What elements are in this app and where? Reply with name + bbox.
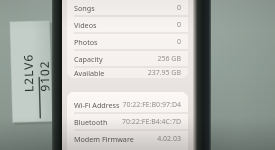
staticText: Bluetooth: [74, 117, 108, 127]
staticText: 0: [176, 20, 181, 30]
staticText: Available: [74, 68, 105, 78]
staticText: 0: [176, 37, 181, 47]
button[interactable]: Available: [67, 67, 188, 78]
staticText: Modem Firmware: [74, 134, 134, 144]
staticText: 4.02.03: [157, 134, 181, 144]
button[interactable]: Bluetooth: [67, 113, 188, 130]
staticText: Songs: [74, 3, 95, 13]
staticText: Photos: [74, 37, 98, 47]
button[interactable]: Wi-Fi Address: [67, 96, 188, 113]
button[interactable]: Songs: [67, 0, 188, 16]
staticText: 237.95 GB: [147, 68, 181, 78]
button[interactable]: Photos: [67, 33, 188, 50]
staticText: L2LV69102: [19, 51, 53, 92]
button[interactable]: Videos: [67, 16, 188, 33]
staticText: Wi-Fi Address: [74, 100, 120, 110]
button[interactable]: Capacity: [67, 50, 188, 67]
staticText: 70:22:FE:B4:4C:7D: [121, 117, 181, 127]
staticText: Videos: [74, 20, 97, 30]
staticText: 0: [176, 3, 181, 13]
staticText: 256 GB: [157, 54, 181, 64]
staticText: 70:22:FE:B0:97:D4: [122, 100, 181, 110]
staticText: Capacity: [74, 54, 103, 64]
button[interactable]: Serial label L2LV69102: [10, 20, 52, 123]
button[interactable]: Modem Firmware: [67, 130, 188, 147]
